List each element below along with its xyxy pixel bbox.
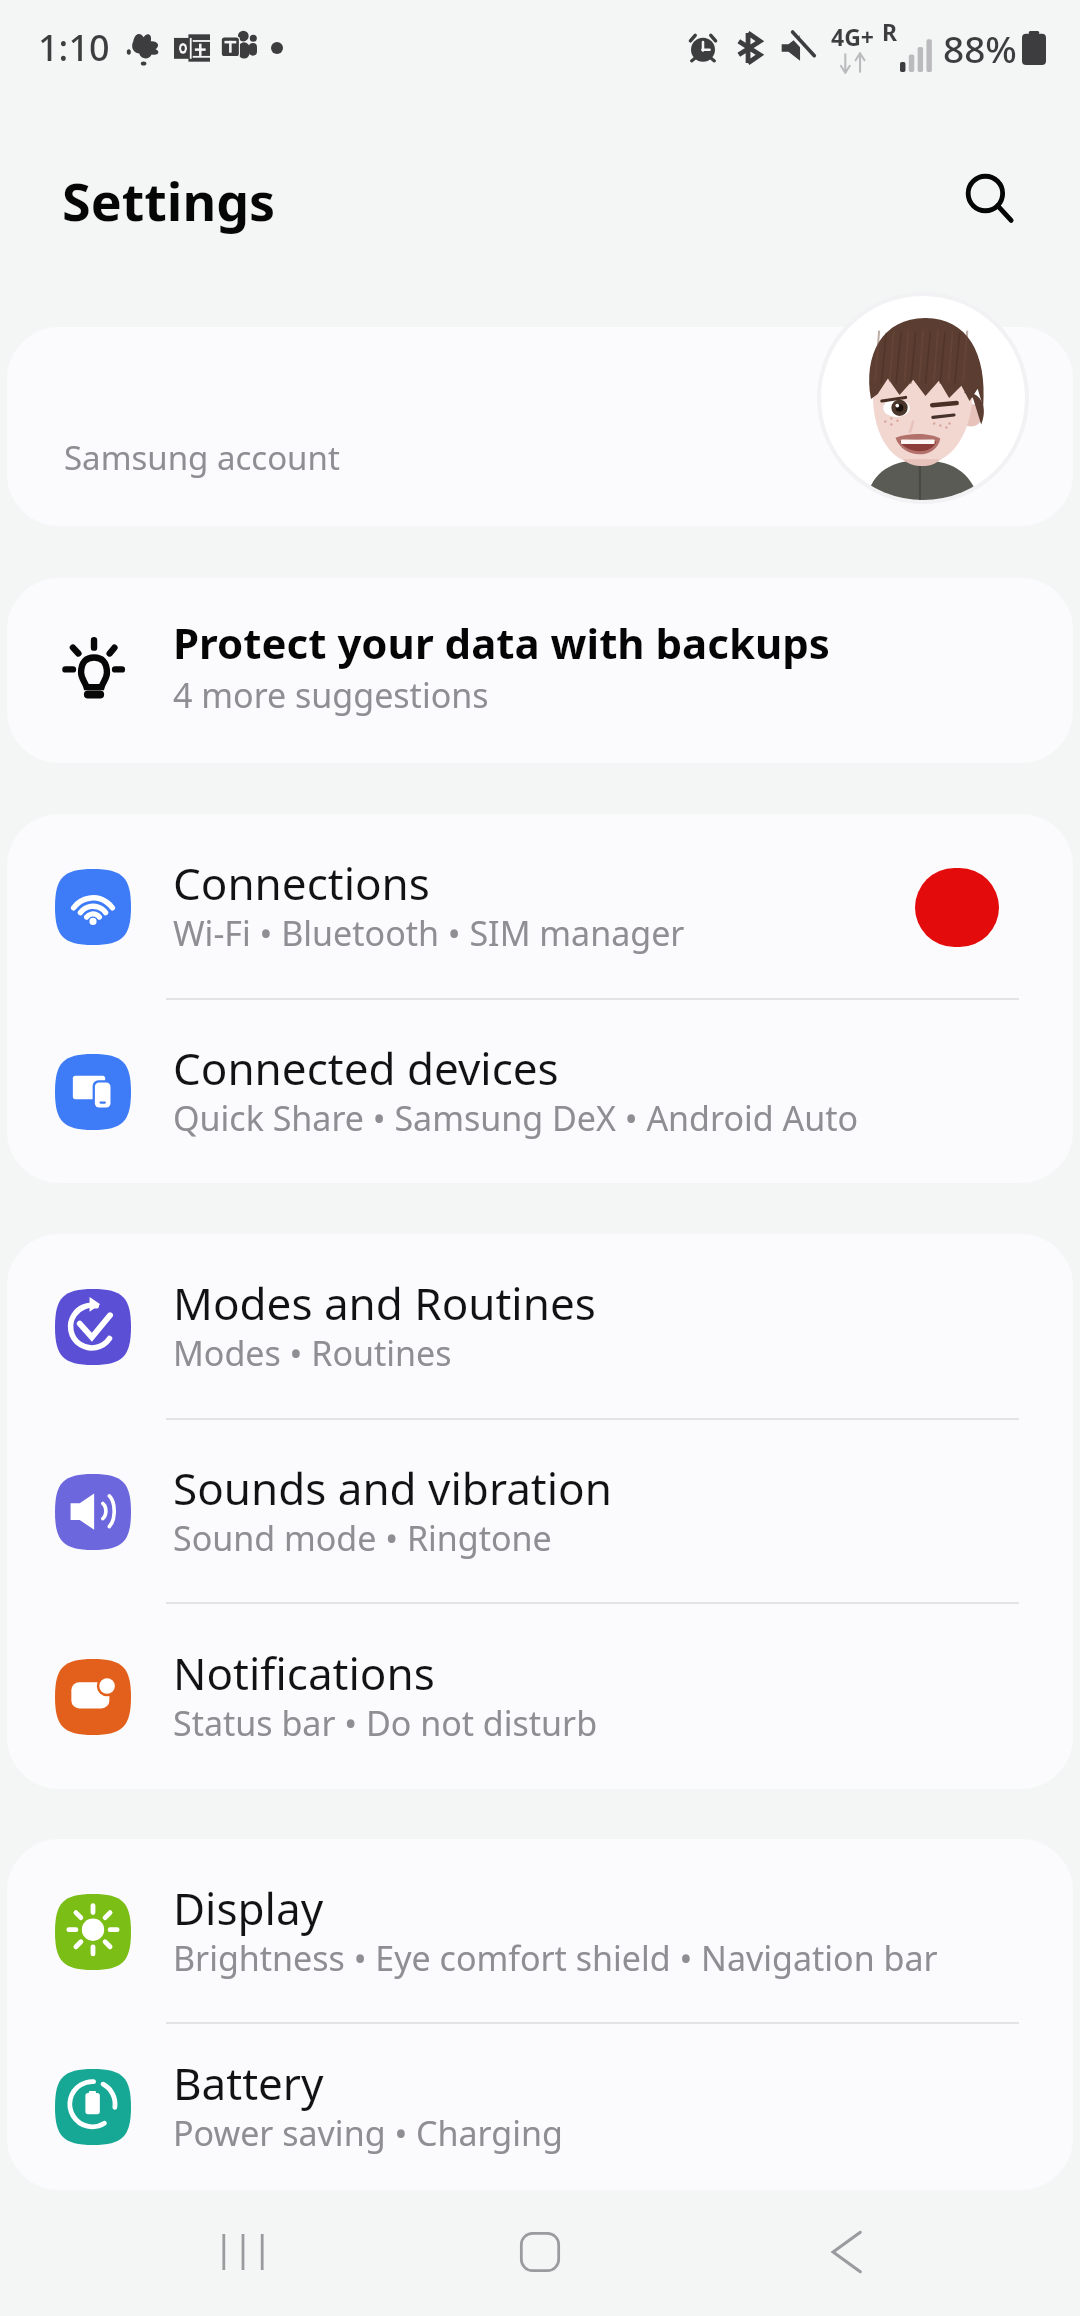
staticText: 4 more suggestions [173,672,489,718]
button[interactable]: Modes and Routines [7,1234,1073,1420]
button[interactable]: Back [786,2192,906,2312]
button[interactable]: Battery [7,2024,1073,2190]
button[interactable]: Connections [7,814,1073,1000]
staticText: Connected devices [173,1038,559,1098]
staticText: Protect your data with backups [173,614,830,671]
staticText: Modes and Routines [173,1273,596,1333]
button[interactable]: Sounds and vibration [7,1420,1073,1604]
staticText: Display [173,1878,324,1938]
staticText: Quick Share • Samsung DeX • Android Auto [173,1095,859,1141]
button[interactable]: Notifications [7,1604,1073,1789]
staticText: Connections [173,853,430,913]
staticText: R [882,16,898,47]
staticText: Power saving • Charging [173,2110,563,2156]
staticText: 4G+ [831,21,874,52]
staticText: Wi-Fi • Bluetooth • SIM manager [173,910,685,956]
staticText: Brightness • Eye comfort shield • Naviga… [173,1935,938,1981]
staticText: Modes • Routines [173,1330,452,1376]
staticText: Sound mode • Ringtone [173,1515,552,1561]
staticText: Status bar • Do not disturb [173,1700,598,1746]
button[interactable]: Samsung account [7,327,1073,526]
staticText: Notifications [173,1643,435,1703]
button[interactable]: Protect your data with backups [7,578,1073,763]
staticText: Sounds and vibration [173,1458,612,1518]
button[interactable]: Recent apps [183,2192,303,2312]
staticText: Battery [173,2053,324,2113]
staticText: Settings [62,165,276,236]
staticText: 88% [943,23,1017,73]
staticText: 1:10 [38,23,110,72]
button[interactable]: Home [480,2192,600,2312]
staticText: Samsung account [64,435,340,480]
button[interactable]: Connected devices [7,1000,1073,1183]
button[interactable]: Display [7,1839,1073,2024]
button[interactable]: Search [940,149,1040,249]
